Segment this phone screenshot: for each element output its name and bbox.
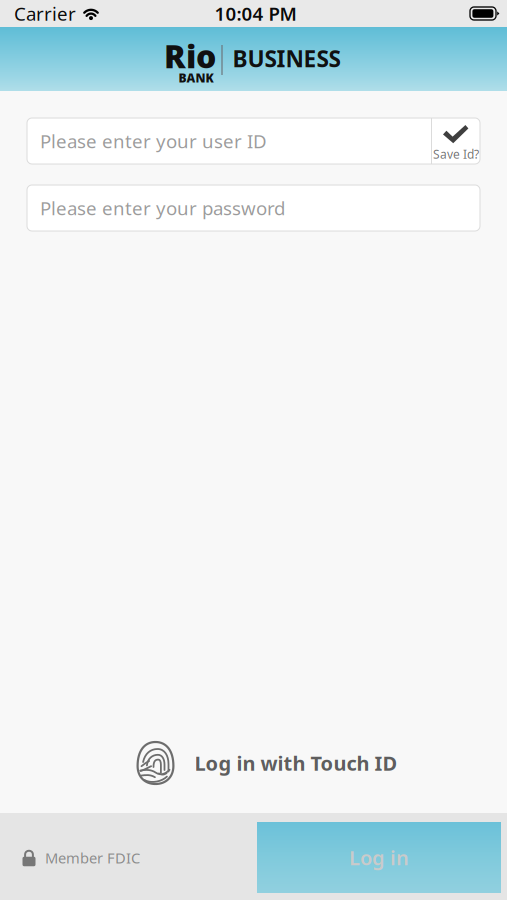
staticText: 10:04 PM <box>214 1 296 26</box>
staticText: Please enter your user ID <box>40 129 267 153</box>
staticText: BUSINESS <box>233 43 341 74</box>
button[interactable]: Log in <box>257 822 501 893</box>
staticText: Member FDIC <box>45 848 140 867</box>
button[interactable]: Please enter your password <box>27 185 480 231</box>
staticText: Save Id? <box>433 146 479 162</box>
staticText: BANK <box>178 70 213 86</box>
staticText: Rio <box>164 34 216 78</box>
staticText: Please enter your password <box>40 196 285 220</box>
staticText: Log in with Touch ID <box>194 750 397 776</box>
button[interactable]: Please enter your user ID <box>27 118 431 164</box>
button[interactable]: Save Id <box>432 118 480 164</box>
staticText: Log in <box>349 844 409 871</box>
button[interactable]: Log in with Touch ID <box>103 737 403 789</box>
staticText: Carrier <box>14 1 76 26</box>
